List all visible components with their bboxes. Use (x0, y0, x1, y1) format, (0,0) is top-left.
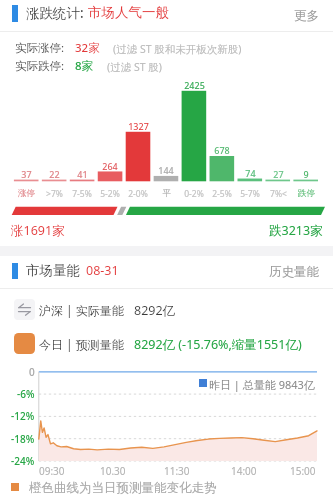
staticText: 678 (214, 144, 230, 156)
button[interactable]: 历史量能 (262, 258, 326, 286)
staticText: 37 (21, 168, 32, 180)
staticText: 平 (162, 188, 171, 199)
staticText: 2-5% (212, 188, 232, 200)
staticText: 2-0% (128, 188, 148, 200)
staticText: 14:00 (231, 464, 257, 478)
staticText: 更多 (294, 8, 319, 24)
staticText: 74 (245, 167, 256, 179)
staticText: 实际涨停: (15, 40, 65, 56)
staticText: 跌停 (298, 188, 315, 199)
staticText: 09:30 (39, 464, 65, 478)
staticText: >7% (46, 188, 63, 200)
staticText: 实际跌停: (15, 58, 65, 74)
staticText: -12% (11, 409, 35, 423)
staticText: 橙色曲线为当日预测量能变化走势 (29, 480, 217, 496)
staticText: 22 (49, 168, 60, 180)
staticText: 跌3213家 (269, 222, 323, 239)
staticText: 27 (273, 168, 284, 180)
staticText: 涨跌统计: (26, 4, 88, 22)
staticText: -24% (11, 454, 35, 468)
staticText: 10.30 (100, 464, 126, 478)
button[interactable]: 更多 (287, 2, 326, 30)
staticText: 7-5% (72, 188, 92, 200)
staticText: (过滤 ST 股和未开板次新股) (113, 42, 242, 56)
staticText: (过滤 ST 股) (107, 60, 162, 74)
button[interactable]: 切换市场 (14, 299, 35, 320)
staticText: 41 (77, 168, 88, 180)
staticText: -6% (17, 387, 35, 401)
staticText: 8家 (75, 58, 94, 74)
staticText: 市场人气一般 (88, 4, 169, 21)
staticText: 涨停 (18, 188, 35, 199)
staticText: 5-2% (100, 188, 120, 200)
staticText: 264 (102, 160, 118, 172)
staticText: 7%< (270, 188, 287, 200)
staticText: -18% (11, 432, 35, 446)
staticText: 0-2% (184, 188, 204, 200)
staticText: 8292亿 (-15.76%,缩量1551亿) (134, 336, 302, 353)
staticText: 市场量能 (26, 262, 80, 279)
staticText: 今日 | 预测量能 (39, 336, 124, 352)
staticText: 8292亿 (134, 302, 176, 319)
staticText: 11:30 (164, 464, 190, 478)
staticText: 5-7% (240, 188, 260, 200)
staticText: 08-31 (86, 262, 119, 279)
staticText: 1327 (128, 120, 149, 132)
staticText: 32家 (75, 40, 100, 56)
staticText: 历史量能 (269, 264, 319, 280)
staticText: 144 (158, 164, 174, 176)
button[interactable] (0, 256, 333, 288)
button[interactable] (0, 0, 333, 31)
staticText: 2425 (184, 79, 205, 91)
staticText: 沪深 | 实际量能 (39, 302, 124, 318)
staticText: 9 (303, 168, 309, 180)
staticText: 涨1691家 (11, 222, 65, 239)
staticText: 15:00 (290, 464, 316, 478)
staticText: 0 (29, 365, 35, 379)
staticText: 昨日 | 总量能 9843亿 (209, 377, 315, 392)
